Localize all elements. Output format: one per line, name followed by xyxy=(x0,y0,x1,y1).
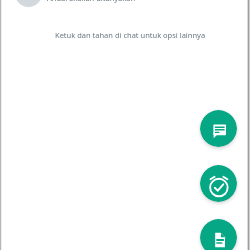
button[interactable]: New chat xyxy=(200,110,237,147)
staticText: Ketuk dan tahan di chat untuk opsi lainn… xyxy=(55,30,206,40)
button[interactable]: Attach document xyxy=(200,219,237,250)
button[interactable]: Set reminder xyxy=(200,165,237,202)
staticText: Anda: Silakan ditanyakan xyxy=(47,0,136,3)
